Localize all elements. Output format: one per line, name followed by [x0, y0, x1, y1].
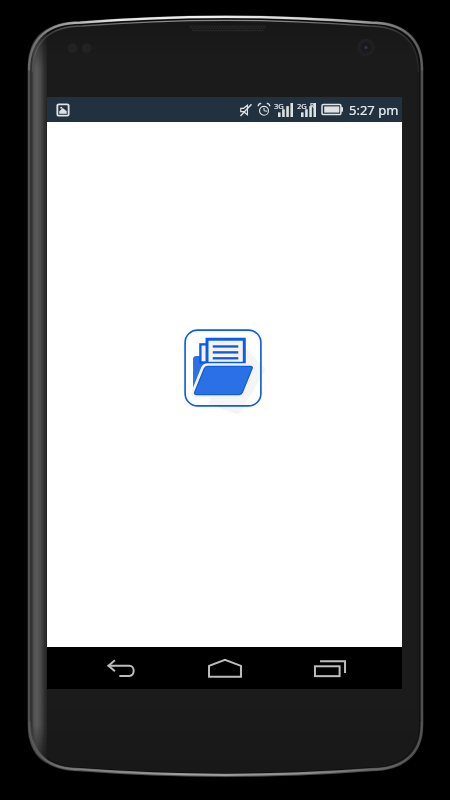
staticText: 5:27 pm [349, 101, 399, 119]
staticText: 2G [297, 101, 307, 111]
button[interactable]: Back [86, 647, 158, 689]
staticText: R [310, 101, 315, 110]
button[interactable]: Recent apps [294, 647, 366, 689]
staticText: 3G [274, 101, 284, 111]
button[interactable]: Home [189, 647, 261, 689]
